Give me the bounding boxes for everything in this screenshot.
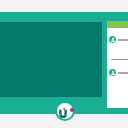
button[interactable] (107, 21, 128, 108)
button[interactable] (107, 69, 128, 76)
button[interactable] (107, 36, 128, 43)
button[interactable]: App logo (57, 103, 73, 119)
